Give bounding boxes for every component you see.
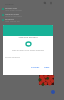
staticText: Add your account bbox=[3, 36, 53, 39]
button[interactable]: CANCEL bbox=[30, 66, 41, 69]
staticText: Your order receipt bbox=[5, 9, 22, 12]
staticText: CANCEL bbox=[31, 66, 40, 69]
staticText: NEXT bbox=[44, 66, 50, 69]
button[interactable]: Google Play bbox=[0, 7, 64, 12]
staticText: Sign in with your email address bbox=[3, 49, 53, 52]
button[interactable]: NEXT bbox=[43, 66, 51, 69]
button[interactable]: Medium Daily bbox=[0, 13, 64, 18]
staticText: Google Play bbox=[5, 7, 18, 10]
button[interactable]: Compose bbox=[51, 90, 55, 94]
staticText: Primary bbox=[5, 2, 14, 5]
staticText: Today's highlights bbox=[5, 15, 22, 18]
staticText: Email address bbox=[5, 56, 21, 59]
staticText: Dropbox bbox=[5, 18, 14, 21]
button[interactable]: Dropbox bbox=[0, 18, 64, 23]
staticText: Medium Daily bbox=[5, 13, 20, 16]
staticText: New shared file bbox=[5, 20, 20, 23]
